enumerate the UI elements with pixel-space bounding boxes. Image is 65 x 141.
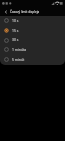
button[interactable]	[0, 55, 65, 65]
staticText: 1 minúta	[12, 47, 27, 52]
staticText: 5 minút	[12, 57, 25, 62]
staticText: 10 s	[12, 18, 19, 23]
button[interactable]	[0, 35, 65, 45]
staticText: 30 s	[12, 37, 19, 42]
button[interactable]	[0, 45, 65, 55]
staticText: 15 s	[12, 28, 19, 33]
button[interactable]: Back	[2, 8, 10, 16]
button[interactable]	[0, 16, 65, 26]
button[interactable]	[0, 26, 65, 36]
staticText: Časový limit displeja	[10, 10, 40, 14]
